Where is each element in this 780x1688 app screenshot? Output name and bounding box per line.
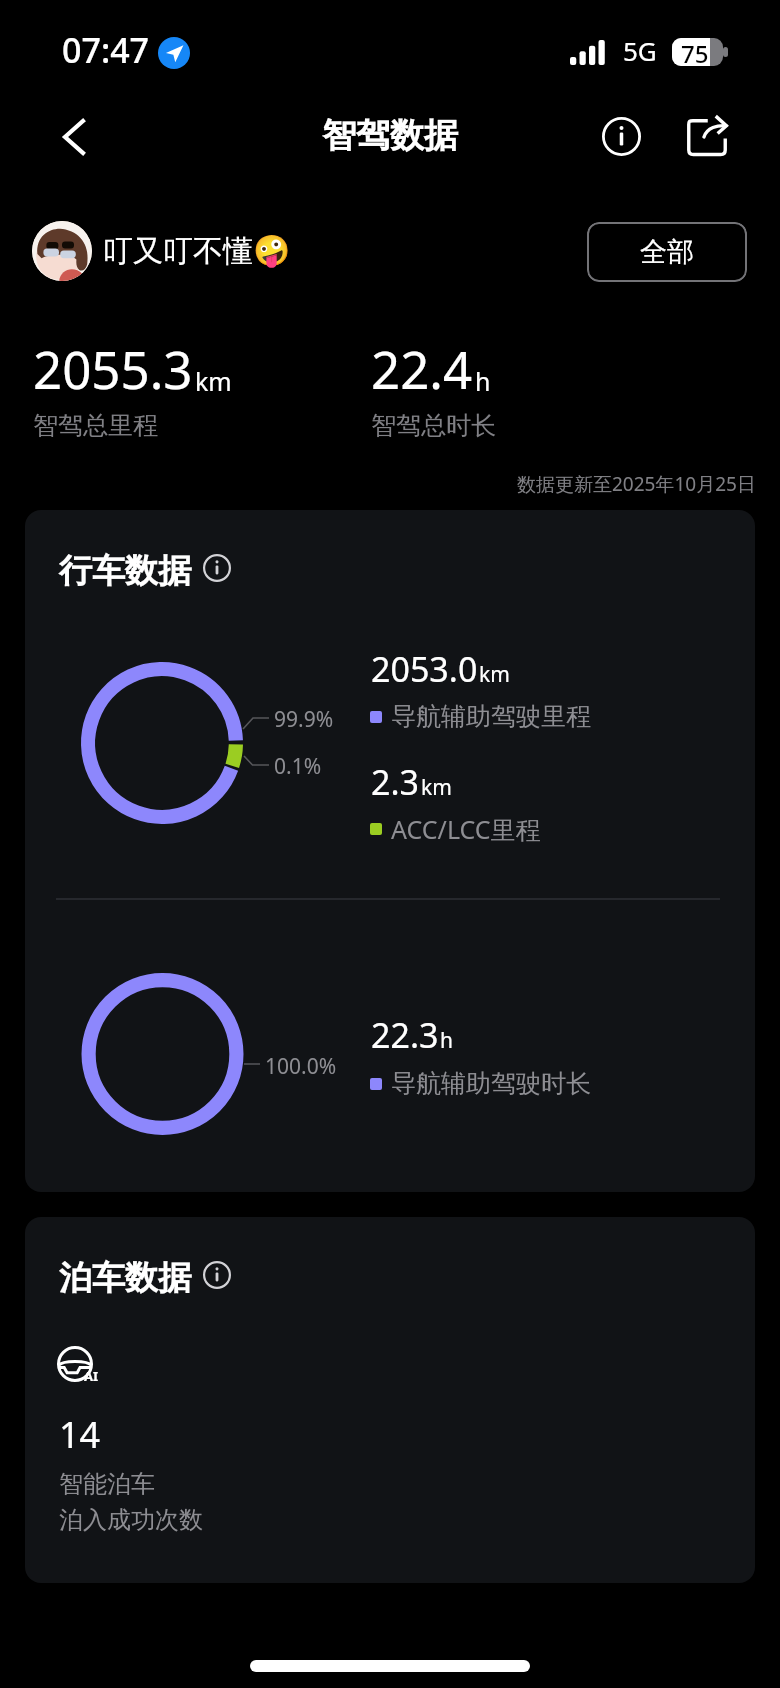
staticText: 导航辅助驾驶时长 <box>391 1068 591 1099</box>
staticText: 智驾总时长 <box>371 410 496 441</box>
staticText: 叮又叮不懂🤪 <box>103 232 291 270</box>
staticText: 2055.3 <box>33 334 193 403</box>
staticText: AI <box>84 1367 99 1385</box>
button[interactable]: Information <box>202 553 232 583</box>
staticText: ACC/LCC里程 <box>391 812 541 846</box>
staticText: 5G <box>623 33 657 68</box>
staticText: h <box>475 364 491 398</box>
staticText: 75 <box>681 38 709 65</box>
staticText: 22.4 <box>371 334 473 403</box>
staticText: km <box>421 773 452 802</box>
staticText: 智驾总里程 <box>33 410 158 441</box>
staticText: 99.9% <box>274 705 334 734</box>
button[interactable]: Back <box>46 109 102 165</box>
button[interactable]: Share <box>678 108 735 165</box>
staticText: 22.3 <box>371 1012 439 1058</box>
button[interactable]: Profile avatar <box>32 221 92 281</box>
staticText: 0.1% <box>274 752 322 781</box>
button[interactable]: Information <box>202 1260 232 1290</box>
button[interactable]: Information <box>593 108 650 165</box>
staticText: 100.0% <box>265 1052 337 1081</box>
staticText: 智驾数据 <box>322 114 458 157</box>
staticText: km <box>479 660 510 689</box>
staticText: h <box>440 1026 453 1055</box>
staticText: 2053.0 <box>371 646 478 692</box>
staticText: 智能泊车 <box>59 1469 155 1499</box>
staticText: km <box>195 364 232 398</box>
staticText: 2.3 <box>371 759 420 805</box>
staticText: 07:47 <box>62 27 150 73</box>
staticText: 导航辅助驾驶里程 <box>391 701 591 732</box>
staticText: 全部 <box>640 235 694 269</box>
button[interactable]: 全部 <box>587 222 747 282</box>
staticText: 数据更新至2025年10月25日 <box>517 471 756 497</box>
staticText: 行车数据 <box>59 550 191 592</box>
staticText: 泊入成功次数 <box>59 1505 203 1535</box>
staticText: 14 <box>59 1410 101 1459</box>
staticText: 泊车数据 <box>59 1257 191 1299</box>
